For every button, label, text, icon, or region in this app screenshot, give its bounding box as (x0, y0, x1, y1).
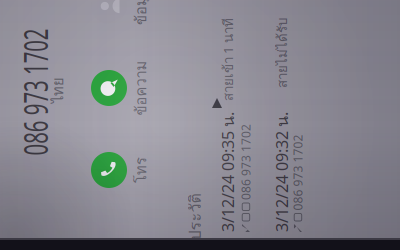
staticText: สายเข้า 1 นาที (224, 143, 307, 164)
staticText: โทร (142, 55, 168, 77)
button[interactable]: โทร (115, 0, 195, 85)
staticText: 3/12/24 09:35 น. (93, 141, 213, 166)
staticText: 086 973 1702 (125, 163, 201, 179)
staticText: ข้อความ (209, 55, 264, 77)
button[interactable]: 3/12/24 09:35 น. (75, 141, 325, 193)
button[interactable]: ข้อมูล (279, 0, 359, 85)
staticText: สายไม่ได้รับ (237, 197, 307, 218)
button[interactable]: ข้อความ (197, 0, 277, 85)
button[interactable]: 3/12/24 09:32 น. (75, 195, 325, 247)
staticText: 3/12/24 09:32 น. (93, 195, 213, 220)
